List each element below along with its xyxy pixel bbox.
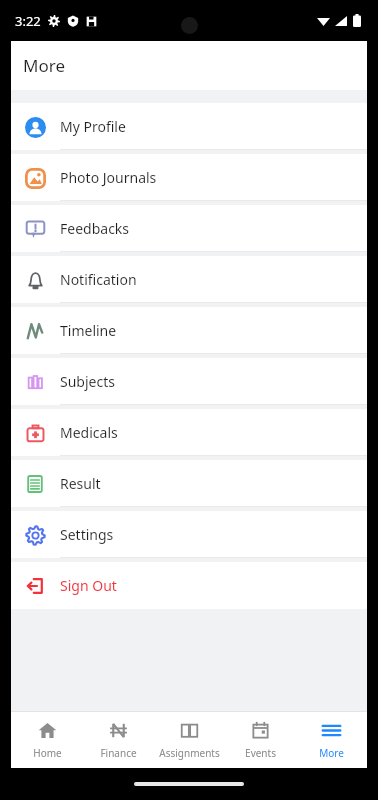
button[interactable]: Settings [11,511,367,558]
staticText: Subjects [60,372,115,391]
button[interactable]: Subjects [11,358,367,405]
staticText: Events [245,746,276,760]
staticText: Photo Journals [60,168,157,187]
button[interactable]: More [296,712,367,768]
staticText: Assignments [159,746,220,760]
button[interactable]: Assignments [154,712,225,768]
staticText: 3:22 [15,12,41,30]
button[interactable]: Timeline [11,307,367,354]
button[interactable]: Notification [11,256,367,303]
staticText: Result [60,474,101,493]
staticText: Feedbacks [60,219,130,238]
staticText: Settings [60,525,114,544]
button[interactable]: Feedbacks [11,205,367,252]
button[interactable]: Events [225,712,296,768]
staticText: My Profile [60,117,126,136]
staticText: Medicals [60,423,118,442]
staticText: Notification [60,270,137,289]
button[interactable]: Medicals [11,409,367,456]
button[interactable]: Home [11,712,83,768]
staticText: Finance [100,746,137,760]
button[interactable]: Result [11,460,367,507]
button[interactable]: My Profile [11,103,367,150]
button[interactable]: Finance [83,712,154,768]
button[interactable]: Photo Journals [11,154,367,201]
staticText: Timeline [60,321,117,340]
staticText: Home [33,746,62,760]
staticText: More [319,746,344,760]
button[interactable]: Sign Out [11,562,367,609]
staticText: Sign Out [60,576,117,595]
staticText: More [23,54,65,77]
